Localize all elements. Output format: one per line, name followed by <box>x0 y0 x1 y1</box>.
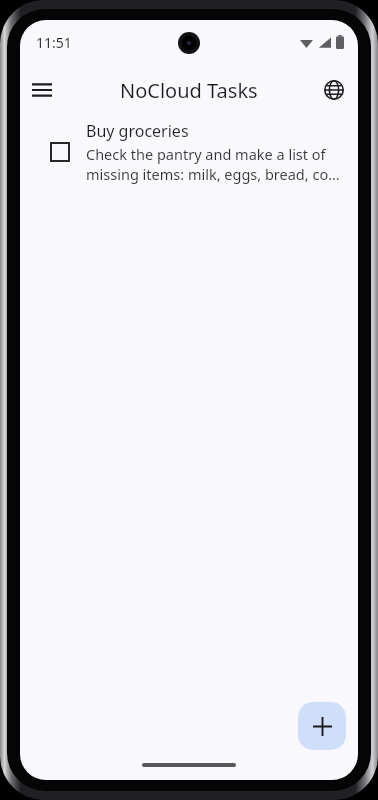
staticText: NoCloud Tasks <box>120 77 258 104</box>
button[interactable]: Add task <box>298 702 346 750</box>
button[interactable]: Mark task complete <box>20 116 358 184</box>
staticText: Check the pantry and make a list of miss… <box>86 144 344 184</box>
staticText: 11:51 <box>36 33 72 52</box>
button[interactable]: Open navigation menu <box>20 68 64 112</box>
button[interactable]: Mark task complete <box>42 134 78 170</box>
staticText: Buy groceries <box>86 120 189 142</box>
button[interactable]: Change language <box>312 68 356 112</box>
